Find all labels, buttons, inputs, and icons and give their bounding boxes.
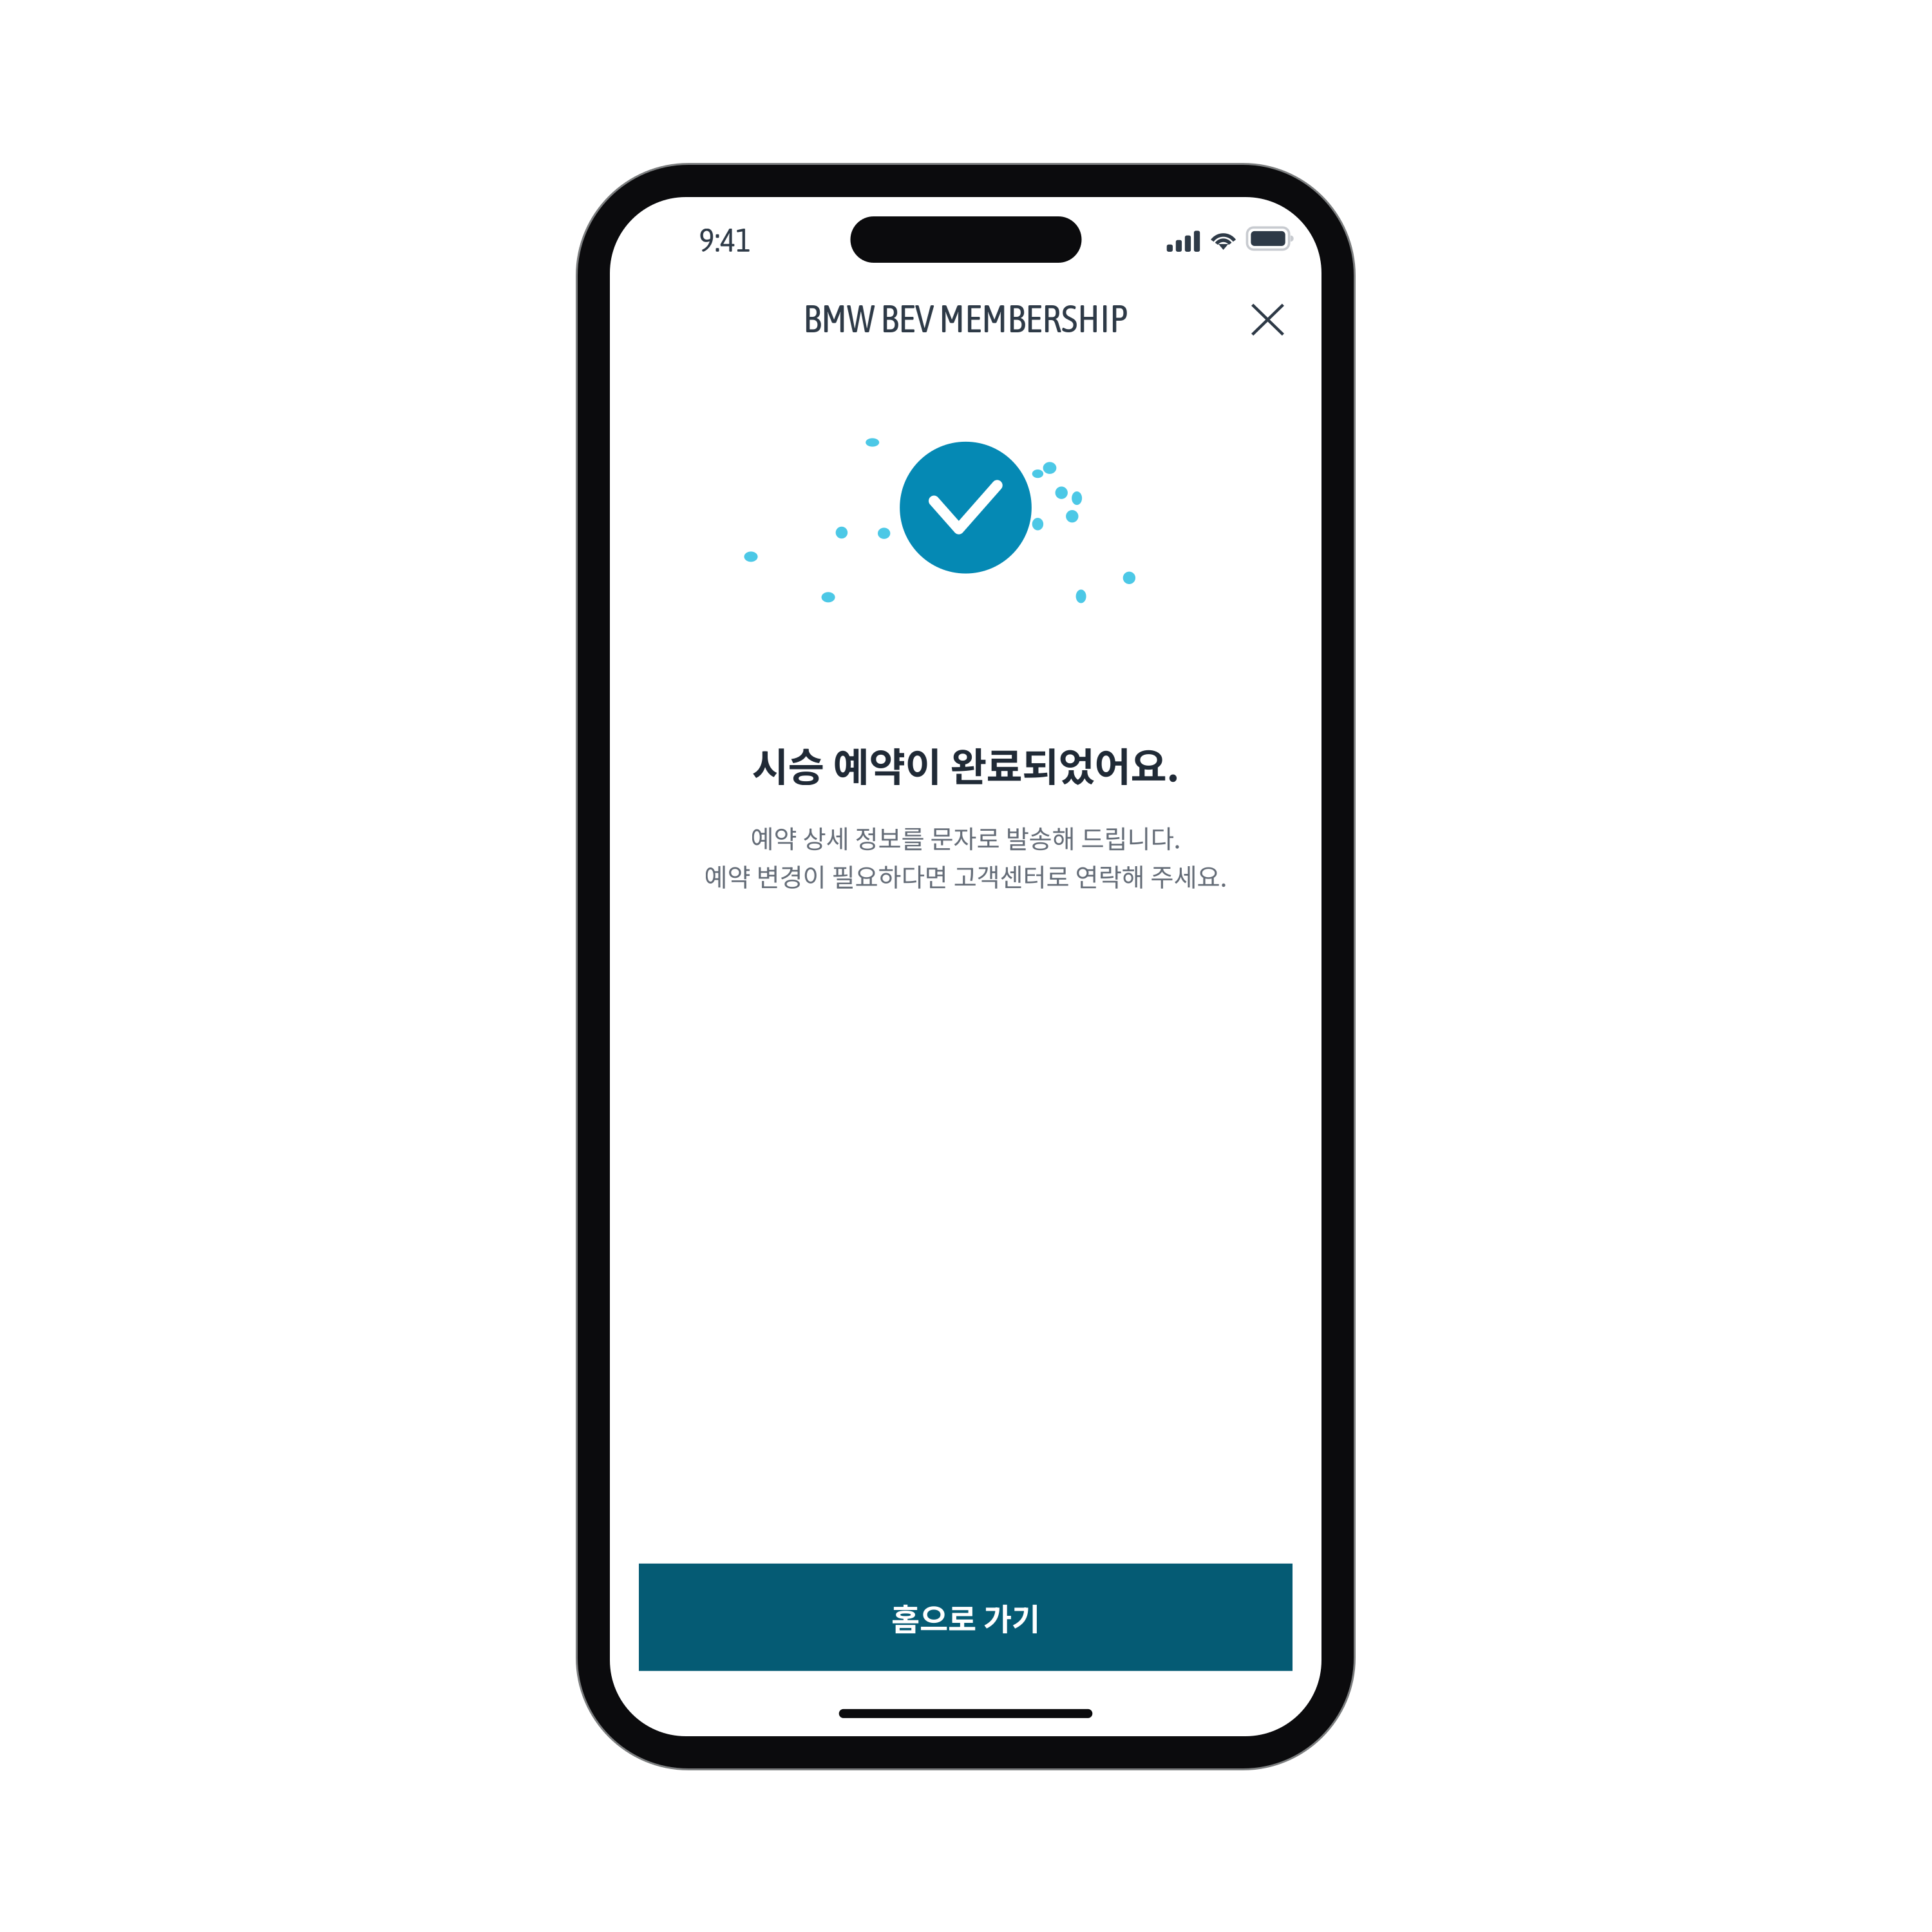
staticText: 9:41 (699, 221, 751, 259)
staticText: 예약 상세 정보를 문자로 발송해 드립니다. (751, 819, 1181, 856)
staticText: 시승 예약이 완료되었어요. (752, 736, 1179, 793)
staticText: 홈으로 가기 (891, 1595, 1040, 1640)
staticText: 예약 변경이 필요하다면 고객센터로 연락해 주세요. (704, 857, 1227, 894)
button[interactable]: 홈으로 가기 (639, 1564, 1293, 1671)
staticText: BMW BEV MEMBERSHIP (803, 296, 1128, 341)
button[interactable]: Close (1228, 280, 1308, 359)
